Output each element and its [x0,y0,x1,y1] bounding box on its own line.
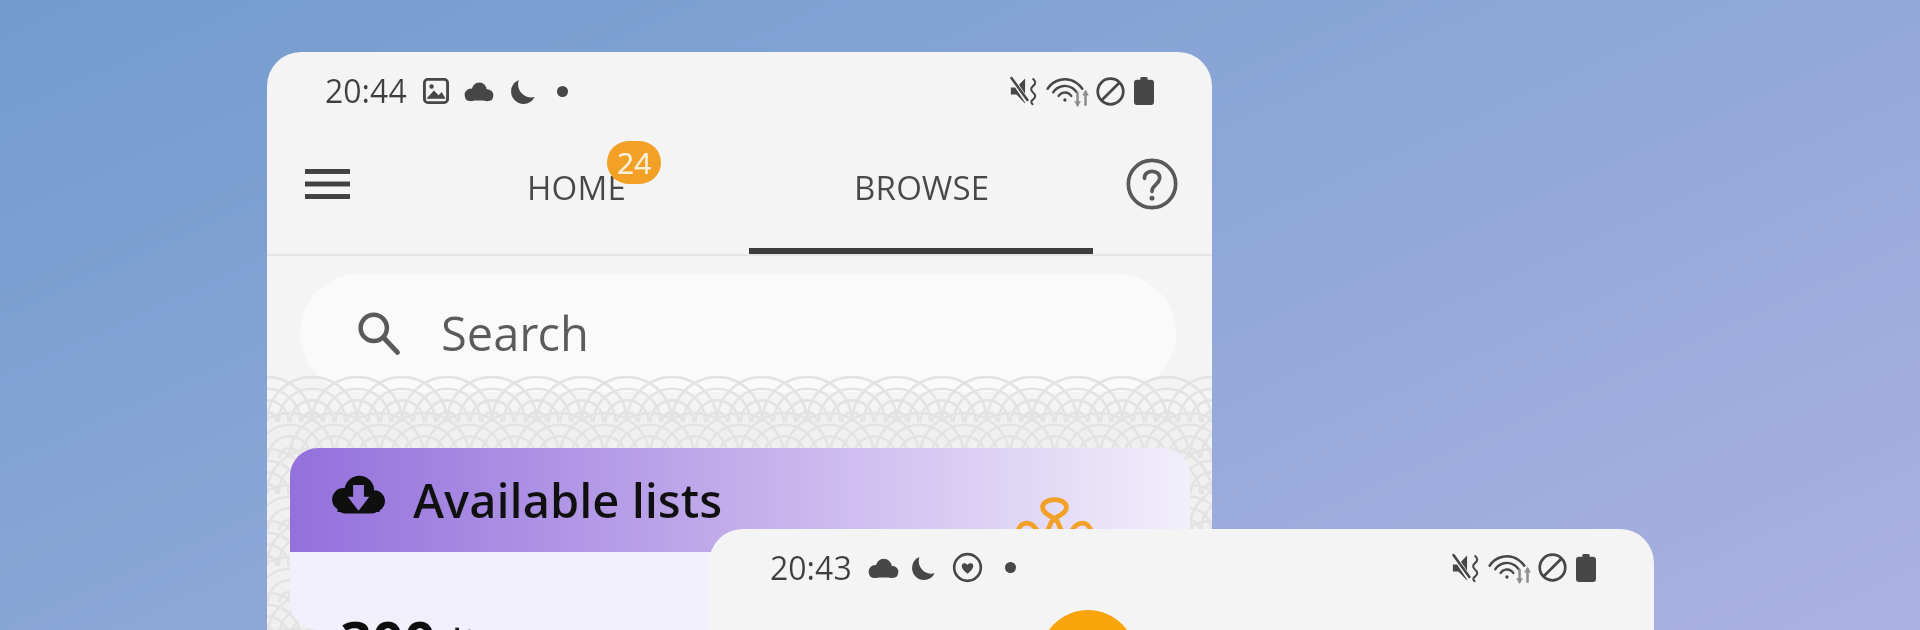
staticText: 24 [617,142,652,183]
staticText: Available lists [413,468,723,532]
staticText: lists [451,613,539,630]
button[interactable]: HOME [441,124,711,250]
staticText: Search [441,301,589,365]
staticText: 20:43 [770,546,852,590]
button[interactable]: Open navigation menu [285,142,370,226]
staticText: 300 [340,602,436,630]
button[interactable]: 24 new items [607,141,661,184]
staticText: 20:44 [325,69,407,113]
button[interactable]: Add [1040,610,1136,630]
button[interactable]: BROWSE [749,124,1094,250]
button[interactable]: Help [1116,148,1188,220]
staticText: HOME [527,165,626,210]
button[interactable]: Available lists [290,448,1190,630]
staticText: BROWSE [854,165,990,210]
button[interactable]: Search [300,274,1176,392]
